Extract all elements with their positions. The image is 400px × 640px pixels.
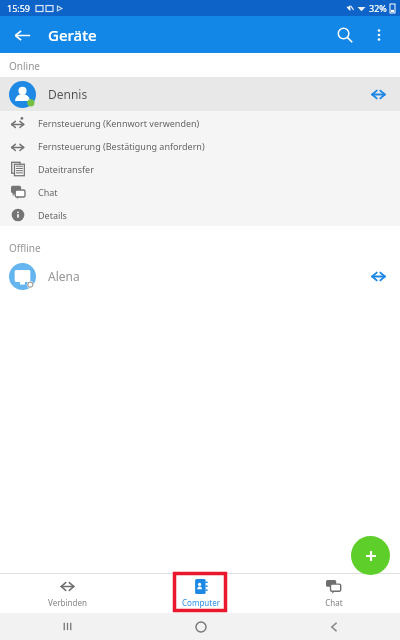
button[interactable]: Computer — [134, 574, 267, 613]
button[interactable]: Details — [0, 203, 400, 226]
button[interactable]: Verbinden — [0, 574, 134, 613]
button[interactable]: Recent apps — [0, 613, 134, 640]
button[interactable]: Dennis — [0, 77, 400, 111]
button[interactable]: Connect to Alena — [365, 263, 391, 289]
button[interactable]: Connect to Dennis — [365, 81, 391, 107]
staticText: Dennis — [48, 86, 88, 102]
button[interactable]: Fernsteuerung (Kennwort verwenden) — [0, 111, 400, 134]
staticText: 32% — [369, 2, 387, 14]
staticText: Chat — [38, 186, 58, 198]
staticText: Alena — [48, 268, 80, 284]
button[interactable]: Chat — [0, 180, 400, 203]
staticText: Dateitransfer — [38, 163, 94, 175]
staticText: Fernsteuerung (Bestätigung anfordern) — [38, 140, 205, 152]
button[interactable]: Dateitransfer — [0, 157, 400, 180]
button[interactable]: Search — [328, 18, 362, 52]
staticText: Online — [9, 59, 40, 73]
button[interactable]: Back — [267, 613, 400, 640]
button[interactable]: Alena — [0, 259, 400, 293]
button[interactable]: Chat — [267, 574, 400, 613]
staticText: Offline — [9, 241, 41, 255]
staticText: Verbinden — [48, 597, 87, 608]
button[interactable]: Fernsteuerung (Bestätigung anfordern) — [0, 134, 400, 157]
button[interactable]: Back — [6, 19, 38, 51]
staticText: 15:59 — [7, 2, 31, 14]
button[interactable]: Add device — [351, 536, 390, 575]
button[interactable]: Home — [134, 613, 267, 640]
staticText: Geräte — [48, 25, 97, 45]
button[interactable]: More options — [362, 18, 396, 52]
staticText: Details — [38, 209, 67, 221]
staticText: Chat — [325, 597, 343, 608]
staticText: Fernsteuerung (Kennwort verwenden) — [38, 117, 200, 129]
staticText: Computer — [182, 597, 220, 608]
